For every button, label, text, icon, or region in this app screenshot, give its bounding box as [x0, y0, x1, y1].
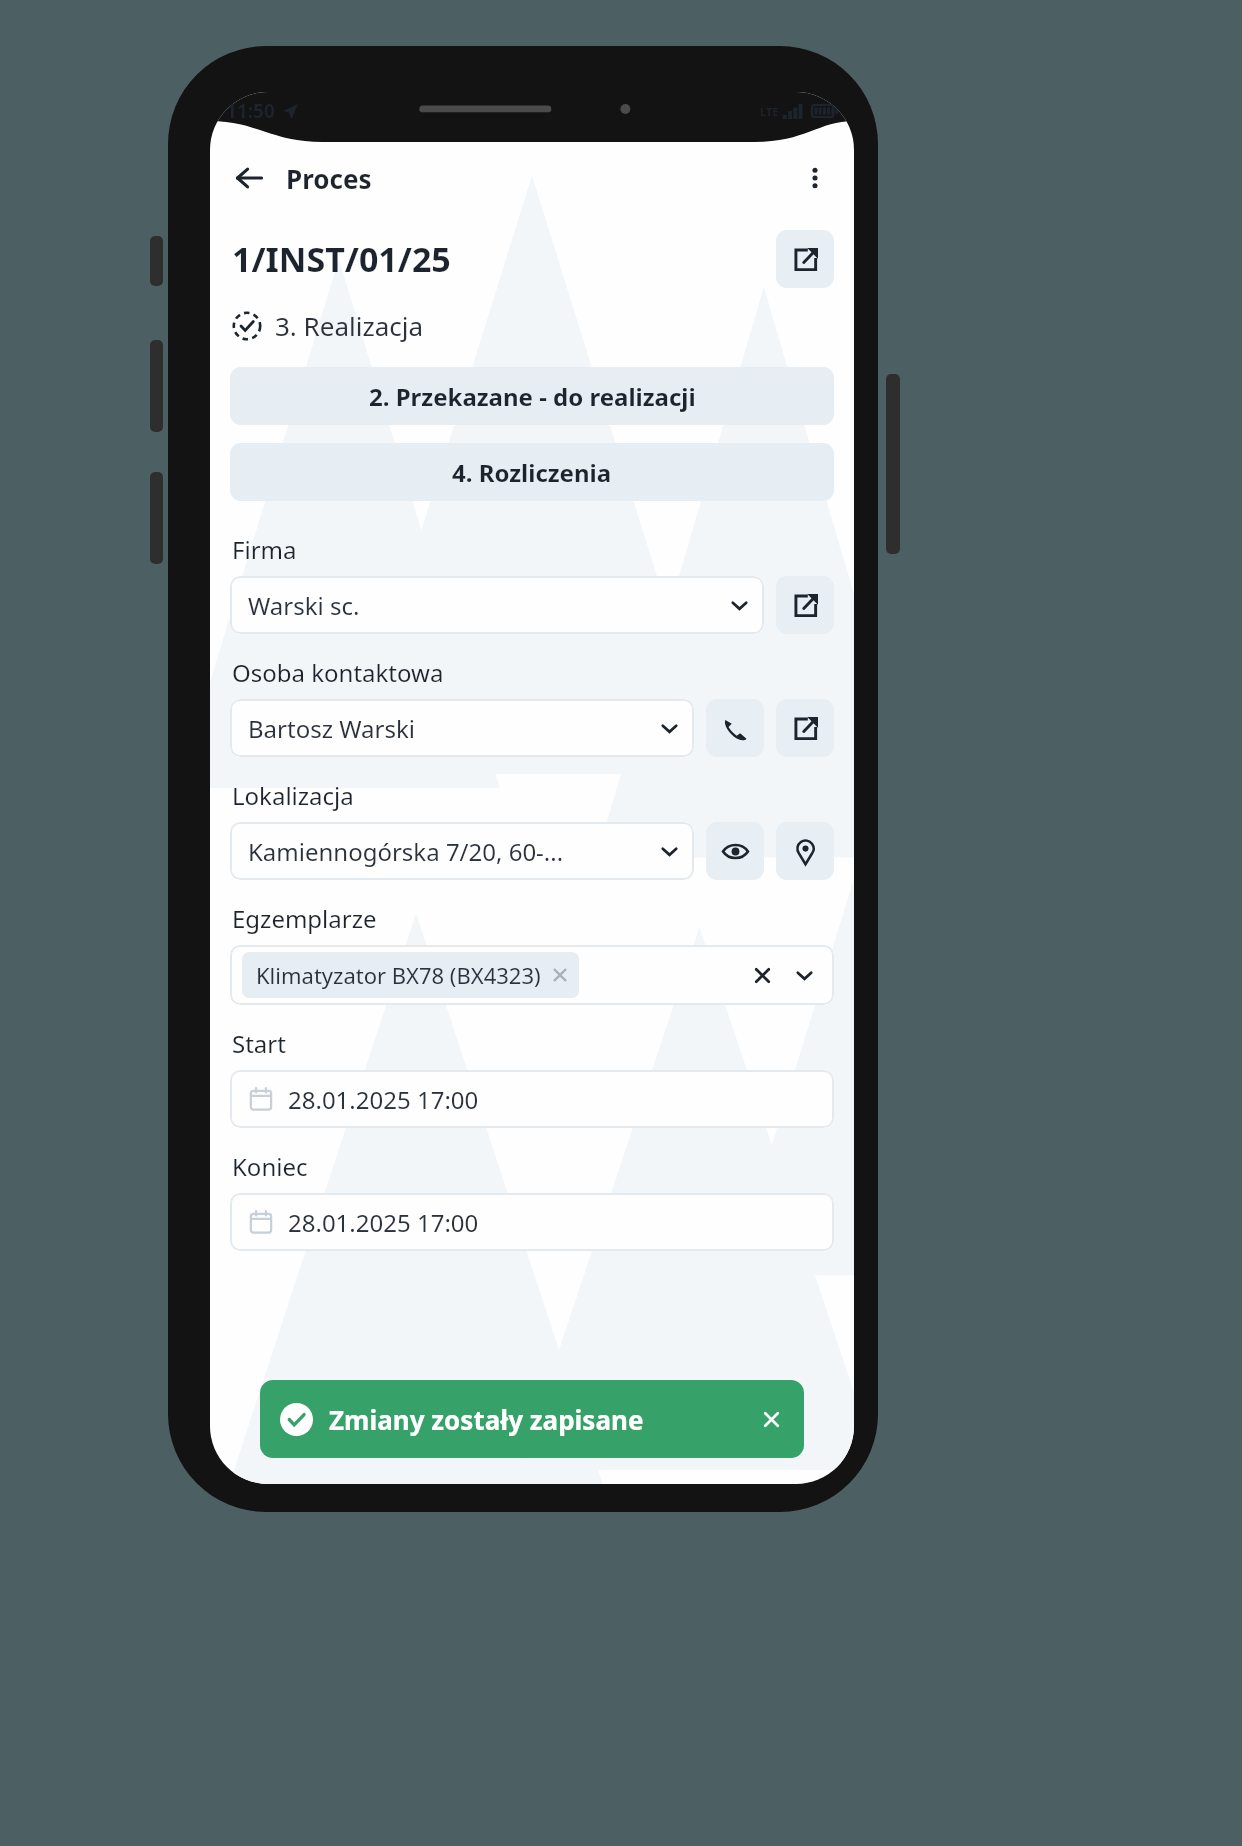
- button[interactable]: Back: [222, 151, 276, 205]
- button[interactable]: Show on map: [776, 822, 834, 880]
- staticText: Kamiennogórska 7/20, 60-...: [248, 835, 651, 868]
- button[interactable]: Open company: [776, 576, 834, 634]
- button[interactable]: Open process: [776, 230, 834, 288]
- staticText: Start: [232, 1027, 286, 1060]
- staticText: 28.01.2025 17:00: [288, 1083, 479, 1116]
- button[interactable]: Kamiennogórska 7/20, 60-...: [230, 822, 694, 880]
- staticText: Osoba kontaktowa: [232, 656, 444, 689]
- button[interactable]: 2. Przekazane - do realizacji: [230, 367, 834, 425]
- staticText: Klimatyzator BX78 (BX4323): [256, 960, 541, 990]
- staticText: Zmiany zostały zapisane: [329, 1402, 644, 1437]
- staticText: Lokalizacja: [232, 779, 354, 812]
- button[interactable]: Zmiany zostały zapisane: [260, 1380, 804, 1458]
- staticText: Warski sc.: [248, 589, 721, 622]
- staticText: 28.01.2025 17:00: [288, 1206, 479, 1239]
- staticText: LTE: [760, 104, 779, 119]
- button[interactable]: Warski sc.: [230, 576, 764, 634]
- staticText: Egzemplarze: [232, 902, 377, 935]
- button[interactable]: Clear selection: [744, 957, 780, 993]
- staticText: Proces: [286, 161, 372, 196]
- button[interactable]: Call contact: [706, 699, 764, 757]
- staticText: 2. Przekazane - do realizacji: [369, 380, 696, 413]
- button[interactable]: 28.01.2025 17:00: [230, 1070, 834, 1128]
- button[interactable]: Klimatyzator BX78 (BX4323): [242, 952, 579, 998]
- button[interactable]: Bartosz Warski: [230, 699, 694, 757]
- button[interactable]: 4. Rozliczenia: [230, 443, 834, 501]
- staticText: 11:50: [226, 98, 275, 124]
- button[interactable]: Klimatyzator BX78 (BX4323): [230, 945, 834, 1005]
- staticText: Bartosz Warski: [248, 712, 651, 745]
- button[interactable]: Dismiss: [750, 1398, 792, 1440]
- staticText: 1/INST/01/25: [232, 236, 451, 282]
- button[interactable]: More options: [788, 151, 842, 205]
- staticText: 3. Realizacja: [275, 308, 424, 343]
- button[interactable]: Preview location: [706, 822, 764, 880]
- button[interactable]: Open contact: [776, 699, 834, 757]
- staticText: 4. Rozliczenia: [452, 456, 612, 489]
- staticText: Firma: [232, 533, 297, 566]
- button[interactable]: 28.01.2025 17:00: [230, 1193, 834, 1251]
- button[interactable]: Expand list: [786, 957, 822, 993]
- staticText: Koniec: [232, 1150, 308, 1183]
